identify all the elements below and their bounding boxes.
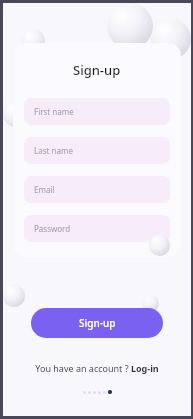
- button[interactable]: Sign-up: [31, 308, 163, 338]
- staticText: Sign-up: [79, 316, 116, 330]
- staticText: Password: [34, 223, 71, 234]
- button[interactable]: Last name: [24, 137, 170, 164]
- staticText: Last name: [34, 145, 73, 156]
- button[interactable]: Password: [24, 215, 170, 242]
- staticText: You have an account ? Log-in: [35, 362, 159, 374]
- button[interactable]: First name: [24, 98, 170, 125]
- staticText: First name: [34, 106, 74, 117]
- button[interactable]: You have an account ? Log-in: [3, 362, 191, 374]
- staticText: Sign-up: [73, 61, 121, 79]
- staticText: Email: [34, 184, 55, 195]
- button[interactable]: Email: [24, 176, 170, 203]
